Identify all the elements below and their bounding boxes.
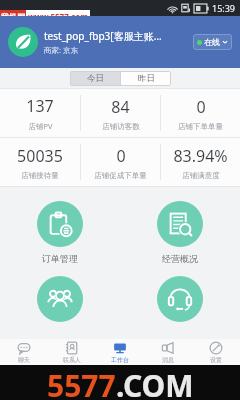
staticText: 店铺PV xyxy=(28,121,53,131)
button[interactable]: 50035 xyxy=(0,138,80,186)
staticText: 店铺接待量 xyxy=(21,171,59,180)
button[interactable]: 设置 xyxy=(192,339,240,365)
button[interactable]: 消息 xyxy=(144,339,192,365)
staticText: 我机网 xyxy=(1,12,25,22)
button[interactable]: 0 xyxy=(81,138,160,186)
button[interactable]: 昨日 xyxy=(121,71,171,86)
staticText: 消息 xyxy=(162,356,174,364)
button[interactable]: 137 xyxy=(0,89,80,137)
staticText: 昨日 xyxy=(138,73,155,84)
button[interactable]: 84 xyxy=(81,89,160,137)
staticText: 聊天 xyxy=(18,356,30,364)
staticText: 经营概况 xyxy=(162,253,198,264)
staticText: 订单管理 xyxy=(42,253,78,264)
staticText: 137 xyxy=(26,95,54,117)
button[interactable]: Function xyxy=(120,276,240,322)
button[interactable]: 0 xyxy=(161,89,240,137)
button[interactable]: 订单管理 xyxy=(0,201,120,264)
staticText: 在线 xyxy=(204,37,220,47)
staticText: 50035 xyxy=(17,145,63,167)
button[interactable]: Function xyxy=(0,276,120,322)
button[interactable]: 工作台 xyxy=(96,339,144,365)
button[interactable]: 联系人 xyxy=(48,339,96,365)
staticText: 店铺下单单量 xyxy=(178,122,223,131)
staticText: 商家: 京东 xyxy=(44,45,78,55)
staticText: 店铺满意度 xyxy=(182,171,220,180)
staticText: 83.94% xyxy=(173,145,228,167)
staticText: 0 xyxy=(116,145,126,167)
button[interactable]: 在线 xyxy=(193,34,232,50)
staticText: 0 xyxy=(196,96,206,118)
button[interactable]: test_pop_fbp3[客服主账… xyxy=(0,16,240,68)
staticText: 5577 xyxy=(47,365,116,400)
staticText: 店铺促成下单量 xyxy=(94,171,147,180)
staticText: www.5577.com xyxy=(28,11,88,22)
staticText: 工作台 xyxy=(111,356,129,364)
staticText: 15:39 xyxy=(212,2,236,14)
button[interactable]: 83.94% xyxy=(161,138,240,186)
staticText: .COM xyxy=(116,365,194,400)
staticText: 联系人 xyxy=(63,356,81,364)
staticText: 店铺访客数 xyxy=(102,122,140,131)
staticText: 84 xyxy=(111,96,130,118)
staticText: 设置 xyxy=(210,356,222,364)
staticText: 今日 xyxy=(87,73,104,84)
button[interactable]: 经营概况 xyxy=(120,201,240,264)
button[interactable]: 今日 xyxy=(70,71,120,86)
button[interactable]: 聊天 xyxy=(0,339,48,365)
staticText: test_pop_fbp3[客服主账… xyxy=(44,29,162,43)
